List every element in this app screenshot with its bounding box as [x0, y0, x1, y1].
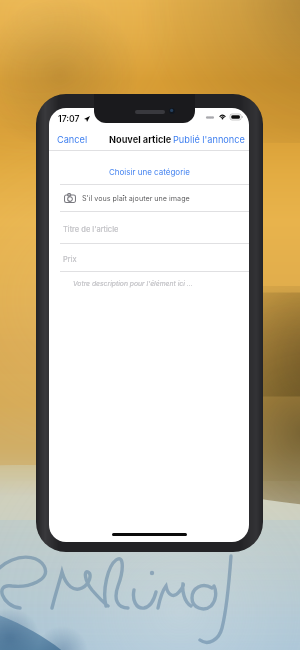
button[interactable]: Titre de l'article [63, 212, 249, 243]
button[interactable]: Prix [63, 244, 249, 271]
staticText: Choisir une catégorie [109, 167, 190, 177]
staticText: S'il vous plaît ajouter une image [82, 194, 190, 203]
other: Add image [64, 193, 76, 203]
staticText: Nouvel article [109, 134, 172, 145]
staticText: Votre description pour l'élément ici ... [73, 279, 193, 287]
button[interactable]: Add image [64, 185, 249, 211]
staticText: Publié l'annonce [173, 134, 245, 145]
staticText: Titre de l'article [63, 225, 119, 234]
staticText: Prix [63, 255, 77, 264]
button[interactable]: Choisir une catégorie [49, 151, 249, 184]
button[interactable]: Publié l'annonce [173, 133, 245, 144]
staticText: Cancel [57, 134, 88, 145]
button[interactable]: Cancel [57, 133, 88, 144]
staticText: 17:07 [58, 114, 80, 124]
